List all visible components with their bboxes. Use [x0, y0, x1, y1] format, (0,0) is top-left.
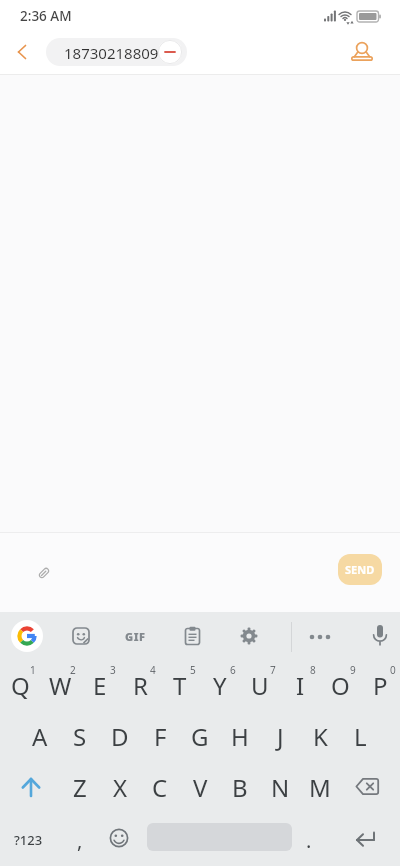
- button[interactable]: F: [140, 711, 180, 762]
- staticText: F: [154, 720, 167, 753]
- staticText: C: [152, 771, 168, 804]
- staticText: W: [49, 669, 72, 702]
- button[interactable]: H: [220, 711, 260, 762]
- button[interactable]: S: [60, 711, 100, 762]
- button[interactable]: Z: [60, 762, 100, 813]
- button[interactable]: [21, 776, 41, 798]
- button[interactable]: V: [180, 762, 220, 813]
- button[interactable]: A: [20, 711, 60, 762]
- button[interactable]: [184, 626, 201, 646]
- button[interactable]: D: [100, 711, 140, 762]
- staticText: ,: [77, 827, 83, 854]
- staticText: O: [331, 669, 350, 702]
- button[interactable]: I: [280, 660, 320, 711]
- staticText: Z: [73, 771, 87, 804]
- staticText: D: [111, 720, 129, 753]
- button[interactable]: B: [220, 762, 260, 813]
- staticText: 18730218809: [64, 43, 159, 63]
- button[interactable]: C: [140, 762, 180, 813]
- button[interactable]: [371, 624, 389, 650]
- button[interactable]: T: [160, 660, 200, 711]
- button[interactable]: ,: [60, 814, 100, 866]
- button[interactable]: Q: [0, 660, 40, 711]
- button[interactable]: G: [180, 711, 220, 762]
- button[interactable]: L: [340, 711, 380, 762]
- staticText: M: [309, 771, 331, 804]
- staticText: Q: [11, 669, 30, 702]
- staticText: N: [271, 771, 290, 804]
- button[interactable]: [109, 828, 129, 848]
- button[interactable]: X: [100, 762, 140, 813]
- button[interactable]: GIF: [120, 626, 150, 646]
- staticText: 0: [390, 663, 396, 677]
- staticText: T: [173, 669, 187, 702]
- staticText: K: [313, 720, 328, 753]
- button[interactable]: N: [260, 762, 300, 813]
- staticText: Y: [213, 669, 227, 702]
- button[interactable]: [350, 41, 374, 63]
- button[interactable]: Y: [200, 660, 240, 711]
- staticText: SEND: [345, 562, 375, 577]
- button[interactable]: [37, 566, 51, 580]
- staticText: 4: [150, 663, 156, 677]
- staticText: ?123: [14, 831, 43, 849]
- staticText: 6: [230, 663, 236, 677]
- button[interactable]: SEND: [338, 554, 382, 585]
- staticText: R: [133, 669, 148, 702]
- button[interactable]: [158, 40, 182, 64]
- button[interactable]: ?123: [2, 814, 54, 866]
- staticText: 8: [310, 663, 316, 677]
- button[interactable]: [11, 620, 43, 652]
- staticText: X: [113, 771, 128, 804]
- button[interactable]: [355, 777, 380, 796]
- staticText: 7: [270, 663, 276, 677]
- button[interactable]: U: [240, 660, 280, 711]
- button[interactable]: [72, 627, 90, 645]
- button[interactable]: R: [120, 660, 160, 711]
- button[interactable]: K: [300, 711, 340, 762]
- staticText: I: [296, 669, 305, 702]
- staticText: 1: [30, 663, 36, 677]
- staticText: J: [277, 720, 284, 753]
- staticText: U: [251, 669, 269, 702]
- button[interactable]: .: [289, 814, 329, 866]
- button[interactable]: W: [40, 660, 80, 711]
- staticText: B: [232, 771, 248, 804]
- staticText: S: [73, 720, 87, 753]
- staticText: H: [231, 720, 249, 753]
- staticText: 2: [70, 663, 76, 677]
- staticText: 5: [190, 663, 196, 677]
- button[interactable]: [306, 632, 334, 642]
- staticText: P: [373, 669, 388, 702]
- button[interactable]: O: [320, 660, 360, 711]
- button[interactable]: [46, 38, 187, 66]
- staticText: G: [191, 720, 209, 753]
- button[interactable]: P: [360, 660, 400, 711]
- staticText: 9: [350, 663, 356, 677]
- staticText: E: [93, 669, 107, 702]
- button[interactable]: [355, 828, 379, 848]
- button[interactable]: E: [80, 660, 120, 711]
- staticText: L: [354, 720, 367, 753]
- staticText: GIF: [125, 629, 146, 644]
- button[interactable]: [17, 45, 27, 59]
- staticText: V: [193, 771, 208, 804]
- button[interactable]: M: [300, 762, 340, 813]
- button[interactable]: J: [260, 711, 300, 762]
- button[interactable]: [240, 627, 258, 645]
- staticText: A: [32, 720, 48, 753]
- staticText: 2:36 AM: [20, 7, 72, 25]
- staticText: 3: [110, 663, 116, 677]
- staticText: .: [306, 827, 312, 854]
